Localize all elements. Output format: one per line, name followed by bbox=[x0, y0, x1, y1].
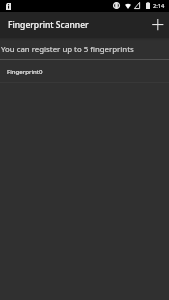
staticText: Fingerprint0 bbox=[7, 67, 43, 75]
staticText: You can register up to 5 fingerprints bbox=[1, 44, 134, 55]
button[interactable]: Add fingerprint bbox=[145, 13, 169, 37]
staticText: 2:14 bbox=[153, 2, 165, 10]
staticText: Fingerprint Scanner bbox=[8, 19, 89, 31]
button[interactable]: Fingerprint0 bbox=[0, 60, 169, 82]
